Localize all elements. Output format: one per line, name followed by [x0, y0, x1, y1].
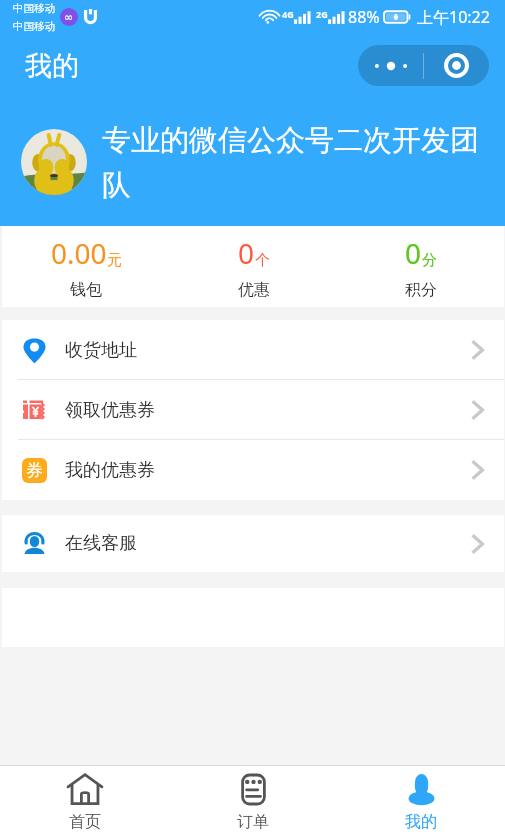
staticText: 0 [405, 234, 422, 272]
staticText: 0.00 [51, 234, 107, 272]
staticText: 优惠 [238, 280, 270, 300]
staticText: 订单 [237, 812, 269, 832]
staticText: 我的 [25, 49, 79, 83]
staticText: 专业的微信公众号二次开发团队 [102, 122, 492, 203]
button[interactable]: 订单 [169, 766, 337, 839]
staticText: 2G [316, 8, 328, 20]
staticText: 中国移动 [13, 2, 55, 15]
button[interactable]: 收货地址 [2, 320, 504, 380]
staticText: 中国移动 [13, 20, 55, 33]
staticText: 积分 [405, 280, 437, 300]
staticText: 券 [26, 460, 43, 481]
button[interactable]: 领取优惠券 [2, 380, 504, 440]
button[interactable]: More options [358, 45, 423, 86]
button[interactable]: 券 [2, 440, 504, 500]
staticText: 个 [255, 251, 270, 270]
button[interactable]: 我的 [337, 766, 505, 839]
staticText: 我的优惠券 [65, 459, 155, 482]
staticText: ∞ [64, 11, 74, 24]
button[interactable]: 首页 [0, 766, 169, 839]
staticText: 上午10:22 [417, 6, 490, 28]
button[interactable]: 0 [170, 226, 337, 307]
staticText: 钱包 [70, 280, 102, 300]
staticText: 4G [282, 8, 294, 20]
staticText: 领取优惠券 [65, 399, 155, 422]
button[interactable]: Close mini program [424, 45, 489, 86]
staticText: 收货地址 [65, 339, 137, 362]
staticText: 88% [348, 6, 380, 28]
staticText: 元 [107, 251, 122, 270]
staticText: 我的 [405, 812, 437, 832]
staticText: 首页 [69, 812, 101, 832]
button[interactable]: 0 [337, 226, 504, 307]
button[interactable]: 在线客服 [2, 515, 504, 572]
staticText: 分 [422, 251, 437, 270]
button[interactable]: 专业的微信公众号二次开发团队 [0, 98, 505, 226]
staticText: 0 [238, 234, 255, 272]
staticText: 在线客服 [65, 532, 137, 555]
button[interactable]: 0.00 [2, 226, 170, 307]
